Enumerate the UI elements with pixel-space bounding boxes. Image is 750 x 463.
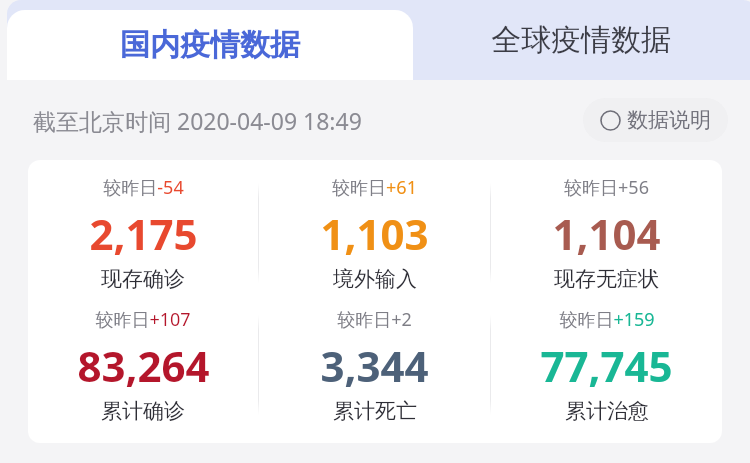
staticText: 较昨日+61 [332, 175, 417, 200]
staticText: 较昨日+56 [564, 175, 649, 200]
button[interactable]: 全球疫情数据 [412, 0, 750, 80]
button[interactable]: 较昨日+107 [28, 307, 258, 424]
button[interactable]: 较昨日+159 [491, 307, 722, 424]
staticText: 累计死亡 [333, 398, 417, 424]
staticText: 累计治愈 [565, 398, 649, 424]
staticText: 国内疫情数据 [120, 26, 300, 64]
staticText: 77,745 [540, 337, 673, 394]
staticText: 83,264 [77, 337, 210, 394]
staticText: 3,344 [320, 337, 429, 394]
staticText: 现存确诊 [101, 266, 185, 292]
staticText: 较昨日-54 [103, 175, 184, 200]
staticText: 1,104 [552, 205, 661, 262]
staticText: 累计确诊 [101, 398, 185, 424]
staticText: 数据说明 [627, 107, 711, 133]
button[interactable]: 较昨日-54 [28, 175, 258, 292]
staticText: 境外输入 [333, 266, 417, 292]
staticText: 截至北京时间 2020-04-09 18:49 [33, 105, 362, 136]
other: 数据说明 [600, 110, 621, 131]
button[interactable]: 国内疫情数据 [7, 10, 413, 80]
staticText: 较昨日+2 [337, 307, 412, 332]
button[interactable]: 数据说明 [583, 98, 728, 142]
staticText: 全球疫情数据 [491, 21, 671, 59]
staticText: 2,175 [89, 205, 198, 262]
staticText: 现存无症状 [554, 266, 659, 292]
staticText: 1,103 [320, 205, 429, 262]
button[interactable]: 较昨日+56 [491, 175, 722, 292]
button[interactable]: 较昨日+2 [259, 307, 490, 424]
staticText: 较昨日+107 [95, 307, 191, 332]
button[interactable]: 较昨日+61 [259, 175, 490, 292]
staticText: 较昨日+159 [559, 307, 655, 332]
